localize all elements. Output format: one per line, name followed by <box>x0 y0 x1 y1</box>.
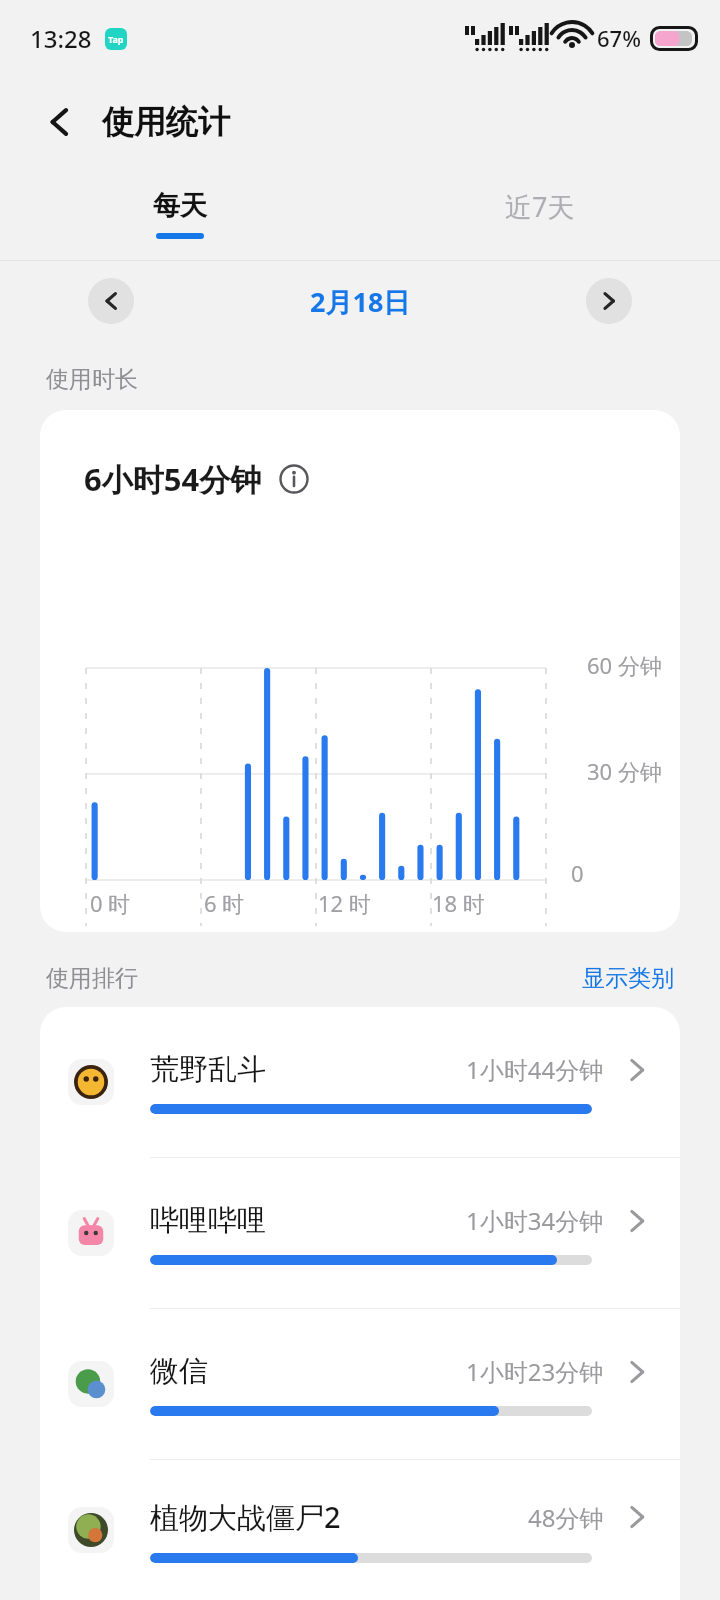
staticText: 植物大战僵尸2 <box>150 1497 341 1537</box>
button[interactable]: 返回 <box>30 93 88 151</box>
staticText: 使用时长 <box>46 365 138 394</box>
staticText: 1小时23分钟 <box>466 1355 604 1388</box>
staticText: 荒野乱斗 <box>150 1051 266 1088</box>
staticText: 12 时 <box>318 888 371 918</box>
button[interactable]: 每天 <box>0 168 360 260</box>
staticText: 1小时34分钟 <box>466 1204 604 1237</box>
staticText: 每天 <box>153 189 207 223</box>
staticText: 使用统计 <box>102 102 230 142</box>
staticText: 近7天 <box>505 188 575 225</box>
staticText: 微信 <box>150 1353 208 1390</box>
button[interactable]: 荒野乱斗 <box>40 1007 680 1157</box>
staticText: Tap <box>108 33 124 45</box>
staticText: 使用排行 <box>46 964 138 993</box>
button[interactable]: 微信 <box>40 1309 680 1459</box>
button[interactable]: 后一天 <box>586 278 632 324</box>
staticText: 2月18日 <box>310 283 411 320</box>
staticText: 18 时 <box>432 888 485 918</box>
staticText: 48分钟 <box>528 1501 604 1534</box>
button[interactable]: 说明 <box>278 463 310 495</box>
button[interactable]: 近7天 <box>360 168 720 260</box>
staticText: 60 分钟 <box>587 650 662 680</box>
staticText: 哔哩哔哩 <box>150 1202 266 1239</box>
button[interactable]: 显示类别 <box>582 964 674 993</box>
button[interactable]: 哔哩哔哩 <box>40 1158 680 1308</box>
staticText: 0 <box>571 858 584 888</box>
staticText: 6小时54分钟 <box>84 458 262 500</box>
button[interactable]: 前一天 <box>88 278 134 324</box>
staticText: 13:28 <box>30 22 92 55</box>
staticText: 1小时44分钟 <box>466 1053 604 1086</box>
staticText: 67% <box>597 23 641 53</box>
staticText: 6 时 <box>204 888 245 918</box>
staticText: 0 时 <box>90 888 131 918</box>
staticText: 显示类别 <box>582 964 674 993</box>
staticText: 30 分钟 <box>587 756 662 786</box>
button[interactable]: 植物大战僵尸2 <box>40 1460 680 1600</box>
